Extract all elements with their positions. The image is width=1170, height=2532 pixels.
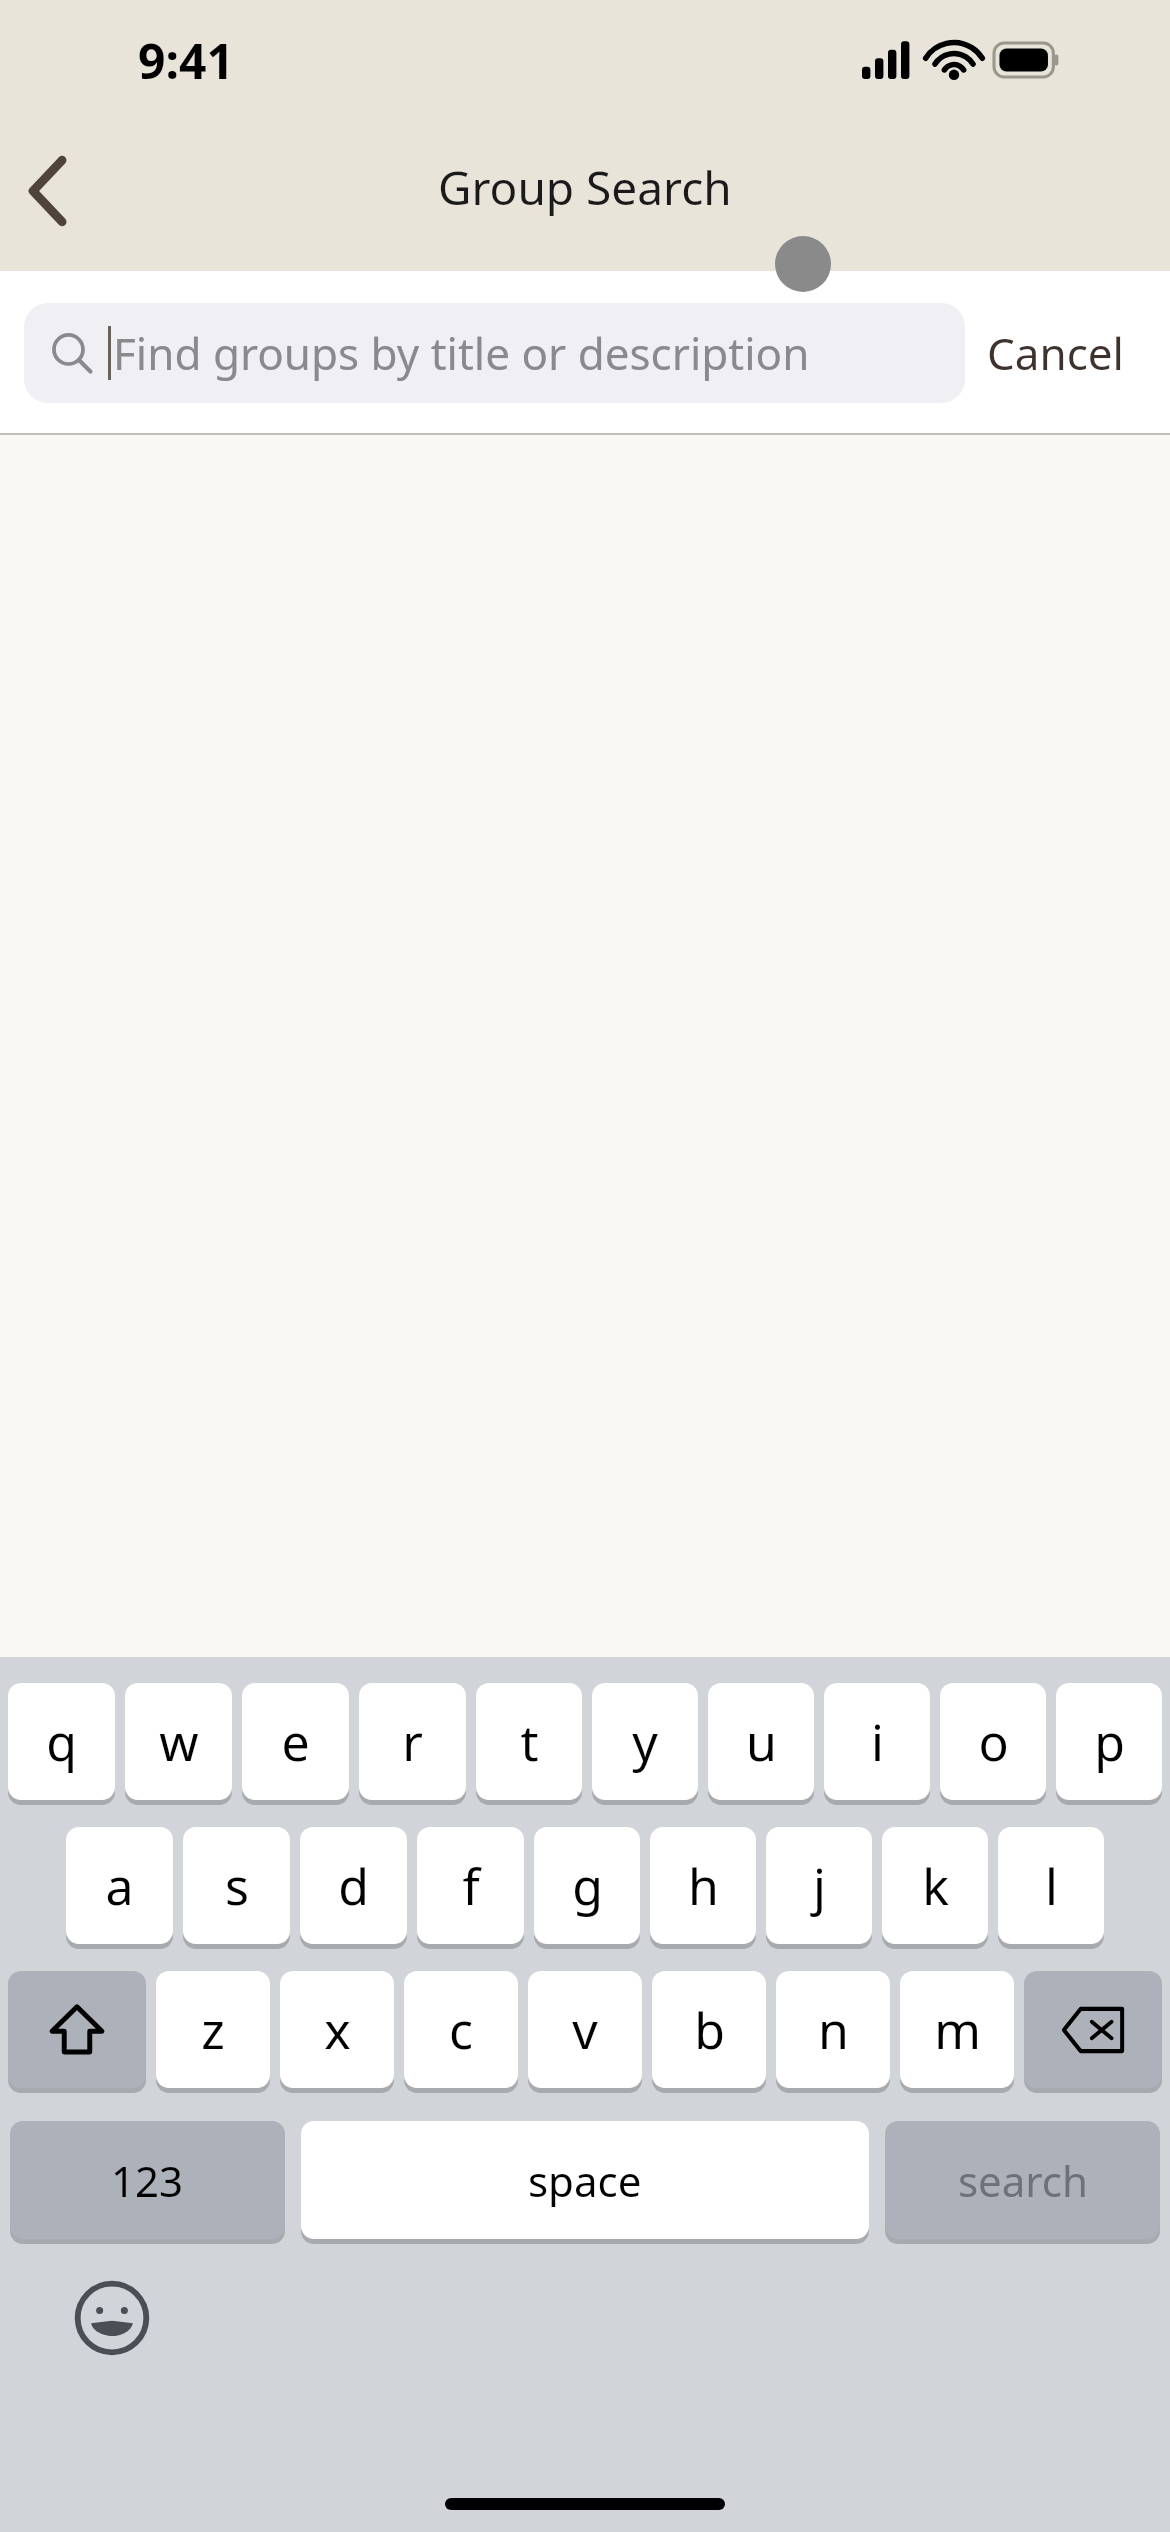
staticText: a <box>105 1852 134 1920</box>
button[interactable]: Backspace <box>1024 1971 1162 2088</box>
button[interactable]: s <box>183 1827 290 1944</box>
button[interactable]: Cancel <box>965 303 1146 403</box>
staticText: b <box>694 1996 725 2064</box>
button[interactable]: q <box>8 1683 115 1800</box>
button[interactable]: z <box>156 1971 270 2088</box>
staticText: f <box>462 1852 480 1920</box>
button[interactable]: a <box>66 1827 173 1944</box>
button[interactable]: Back <box>0 136 96 246</box>
button[interactable]: n <box>776 1971 890 2088</box>
button[interactable]: k <box>882 1827 988 1944</box>
button[interactable]: Shift <box>8 1971 146 2088</box>
button[interactable]: r <box>359 1683 466 1800</box>
button[interactable]: v <box>528 1971 642 2088</box>
staticText: g <box>572 1852 603 1920</box>
button[interactable]: x <box>280 1971 394 2088</box>
staticText: x <box>324 1996 351 2064</box>
button[interactable]: p <box>1056 1683 1162 1800</box>
staticText: i <box>871 1708 884 1776</box>
button[interactable]: t <box>476 1683 582 1800</box>
staticText: h <box>688 1852 719 1920</box>
staticText: p <box>1094 1708 1125 1776</box>
staticText: t <box>520 1708 539 1776</box>
staticText: w <box>159 1708 199 1776</box>
staticText: k <box>922 1852 949 1920</box>
staticText: c <box>449 1996 473 2064</box>
button[interactable]: i <box>824 1683 930 1800</box>
staticText: l <box>1045 1852 1058 1920</box>
staticText: u <box>746 1708 777 1776</box>
staticText: space <box>528 2152 642 2209</box>
button[interactable]: j <box>766 1827 872 1944</box>
staticText: 123 <box>111 2152 184 2209</box>
button[interactable]: g <box>534 1827 640 1944</box>
button[interactable]: b <box>652 1971 766 2088</box>
button[interactable]: search <box>885 2121 1160 2239</box>
staticText: r <box>402 1708 423 1776</box>
staticText: j <box>813 1852 826 1920</box>
button[interactable]: m <box>900 1971 1014 2088</box>
staticText: y <box>632 1708 658 1776</box>
staticText: q <box>46 1708 77 1776</box>
button[interactable]: y <box>592 1683 698 1800</box>
button[interactable]: w <box>125 1683 232 1800</box>
button[interactable]: Find groups by title or description <box>24 303 965 403</box>
button[interactable]: e <box>242 1683 349 1800</box>
staticText: z <box>201 1996 225 2064</box>
staticText: e <box>281 1708 310 1776</box>
staticText: s <box>225 1852 249 1920</box>
button[interactable]: Emoji keyboard <box>62 2268 162 2368</box>
staticText: v <box>572 1996 598 2064</box>
button[interactable]: 123 <box>10 2121 285 2239</box>
staticText: Cancel <box>987 323 1124 383</box>
staticText: n <box>818 1996 849 2064</box>
staticText: d <box>338 1852 369 1920</box>
button[interactable]: l <box>998 1827 1104 1944</box>
staticText: search <box>958 2152 1088 2209</box>
staticText: Group Search <box>438 156 732 219</box>
staticText: m <box>934 1996 981 2064</box>
staticText: o <box>978 1708 1009 1776</box>
button[interactable]: c <box>404 1971 518 2088</box>
button[interactable]: u <box>708 1683 814 1800</box>
button[interactable]: o <box>940 1683 1046 1800</box>
button[interactable]: h <box>650 1827 756 1944</box>
staticText: Find groups by title or description <box>113 323 810 383</box>
button[interactable]: space <box>301 2121 869 2239</box>
button[interactable]: f <box>417 1827 524 1944</box>
staticText: 9:41 <box>138 28 234 93</box>
button[interactable]: d <box>300 1827 407 1944</box>
